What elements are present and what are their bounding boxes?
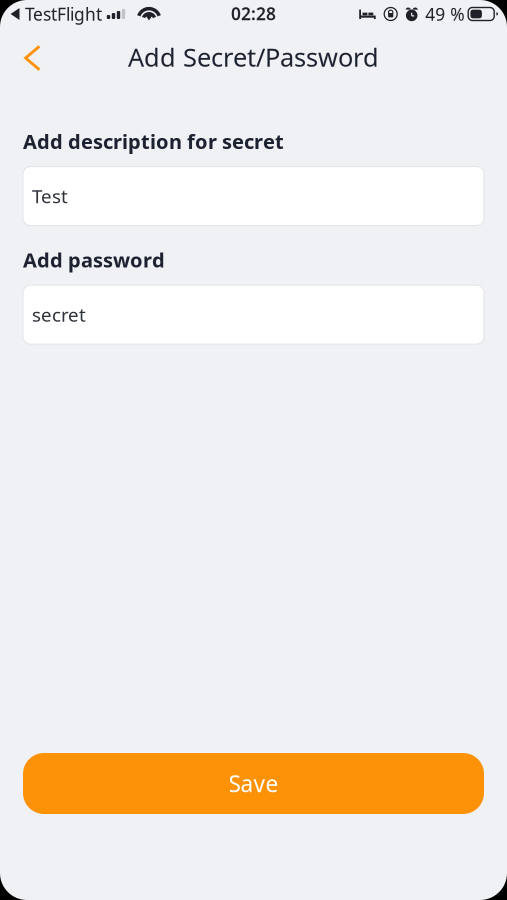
button[interactable]: Save — [23, 753, 484, 814]
staticText: Add password — [23, 247, 165, 273]
staticText: TestFlight — [25, 2, 102, 25]
staticText: Save — [228, 768, 278, 798]
button[interactable]: Test — [23, 167, 484, 226]
staticText: secret — [32, 302, 86, 327]
button[interactable]: Back — [0, 28, 55, 74]
button[interactable]: secret — [23, 285, 484, 344]
staticText: Test — [32, 184, 68, 208]
staticText: 49 % — [425, 2, 464, 25]
staticText: 02:28 — [231, 2, 276, 25]
staticText: Add Secret/Password — [128, 40, 379, 74]
staticText: Add description for secret — [23, 128, 284, 155]
